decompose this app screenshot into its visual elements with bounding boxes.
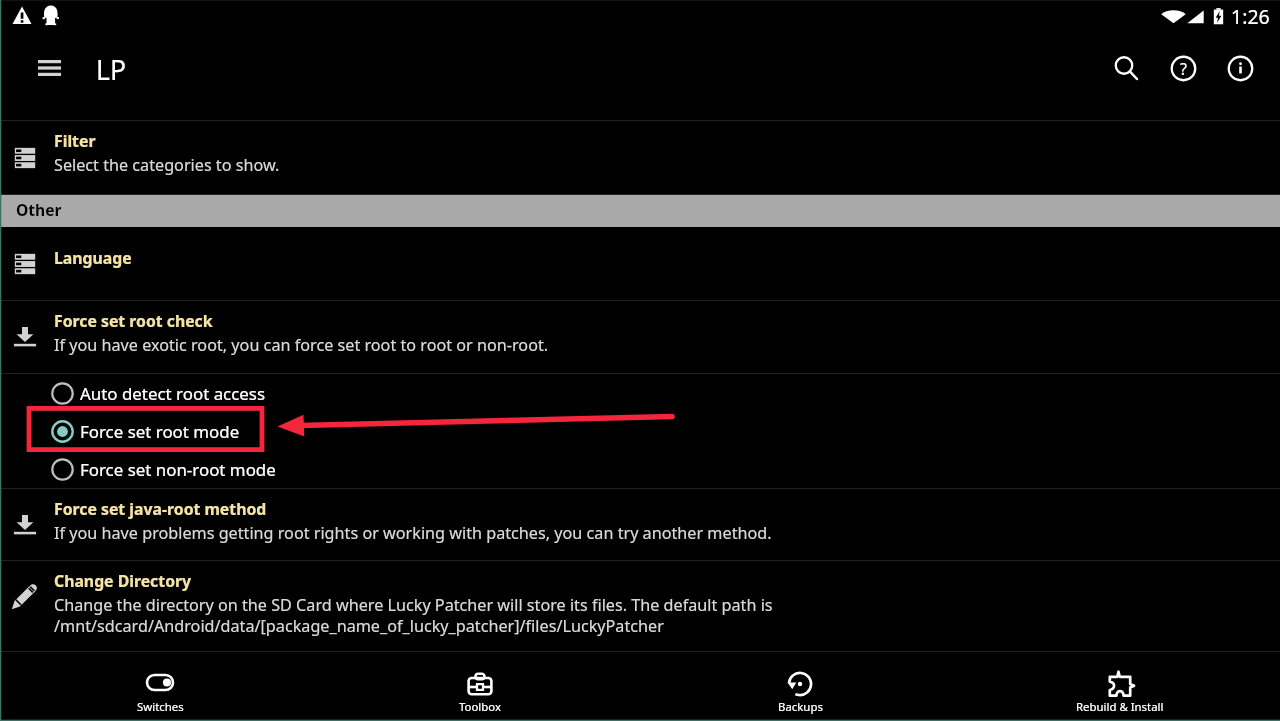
staticText: Change Directory — [54, 570, 192, 592]
button[interactable]: Force set java-root method — [0, 489, 1280, 560]
staticText: Rebuild & Install — [1076, 699, 1164, 715]
button[interactable]: Other — [0, 195, 1280, 227]
staticText: Auto detect root access — [80, 382, 266, 405]
staticText: Other — [16, 199, 62, 220]
staticText: Force set root mode — [80, 420, 240, 443]
button[interactable]: Switches — [0, 652, 320, 721]
staticText: If you have exotic root, you can force s… — [54, 334, 549, 356]
button[interactable]: Backups — [640, 652, 960, 721]
staticText: Select the categories to show. — [54, 154, 280, 176]
staticText: If you have problems getting root rights… — [54, 522, 772, 544]
staticText: Filter — [54, 130, 96, 152]
button[interactable]: Info — [1216, 44, 1264, 92]
staticText: ? — [1180, 58, 1187, 80]
staticText: Language — [54, 247, 132, 269]
button[interactable]: Force set non-root mode — [0, 450, 1280, 488]
button[interactable]: Search — [1102, 44, 1150, 92]
button[interactable]: Language — [0, 227, 1280, 300]
button[interactable]: Force set root mode — [0, 412, 1280, 450]
button[interactable]: Filter — [0, 121, 1280, 194]
button[interactable]: Toolbox — [320, 652, 640, 721]
button[interactable]: Rebuild & Install — [960, 652, 1280, 721]
button[interactable]: Open navigation drawer — [25, 44, 73, 92]
staticText: Switches — [137, 699, 184, 715]
button[interactable]: Help — [1159, 44, 1207, 92]
staticText: LP — [96, 52, 126, 88]
button[interactable]: Change Directory — [0, 561, 1280, 651]
staticText: Backups — [778, 699, 823, 715]
staticText: Force set root check — [54, 310, 213, 332]
staticText: 1:26 — [1231, 3, 1270, 30]
staticText: Change the directory on the SD Card wher… — [54, 594, 773, 637]
staticText: Force set non-root mode — [80, 458, 276, 481]
staticText: Force set java-root method — [54, 498, 267, 520]
button[interactable]: Auto detect root access — [0, 374, 1280, 412]
button[interactable]: Force set root check — [0, 301, 1280, 373]
staticText: Toolbox — [459, 699, 501, 715]
